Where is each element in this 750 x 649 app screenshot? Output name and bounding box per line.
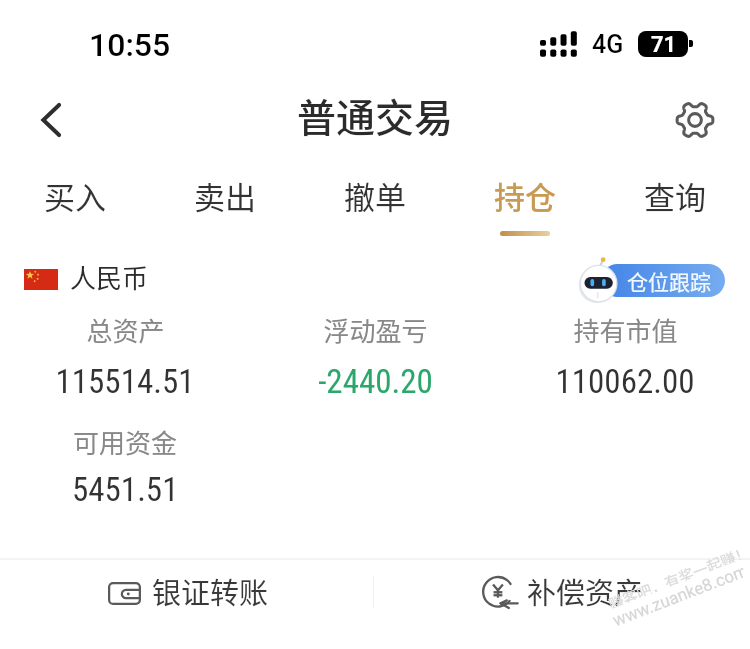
staticText: 卖出 [194, 173, 256, 218]
staticText: 撤单 [344, 173, 406, 218]
staticText: 71 [651, 32, 677, 57]
button[interactable]: 补偿资产 [464, 568, 664, 618]
button[interactable]: Back [23, 90, 83, 150]
staticText: -2440.20 [318, 362, 433, 401]
staticText: 115514.51 [55, 362, 195, 401]
staticText: 总资产 [86, 311, 165, 349]
staticText: 4G [592, 30, 624, 59]
staticText: 持仓 [494, 173, 556, 218]
staticText: 仓位跟踪 [627, 266, 711, 296]
button[interactable]: 买入 [0, 173, 150, 243]
staticText: 持有市值 [573, 311, 678, 349]
staticText: 查询 [644, 173, 706, 218]
button[interactable]: 查询 [600, 173, 750, 243]
staticText: 浮动盈亏 [323, 311, 428, 349]
button[interactable]: 持仓 [450, 173, 600, 243]
button[interactable]: Settings [665, 90, 725, 150]
staticText: 普通交易 [297, 87, 454, 143]
staticText: 可用资金 [73, 423, 178, 461]
staticText: 10:55 [89, 26, 171, 64]
button[interactable]: 银证转账 [88, 568, 288, 618]
staticText: 买入 [44, 173, 106, 218]
button[interactable]: 撤单 [300, 173, 450, 243]
staticText: www.zuanke8.com [610, 561, 747, 628]
staticText: 人民币 [70, 258, 149, 296]
staticText: 110062.00 [555, 362, 695, 401]
staticText: 5451.51 [72, 470, 179, 509]
staticText: 赚客吧，有奖一起赚！ [605, 544, 741, 609]
button[interactable]: 卖出 [150, 173, 300, 243]
staticText: 补偿资产 [527, 570, 644, 612]
button[interactable]: 仓位跟踪 [601, 264, 725, 297]
staticText: 银证转账 [152, 570, 269, 612]
